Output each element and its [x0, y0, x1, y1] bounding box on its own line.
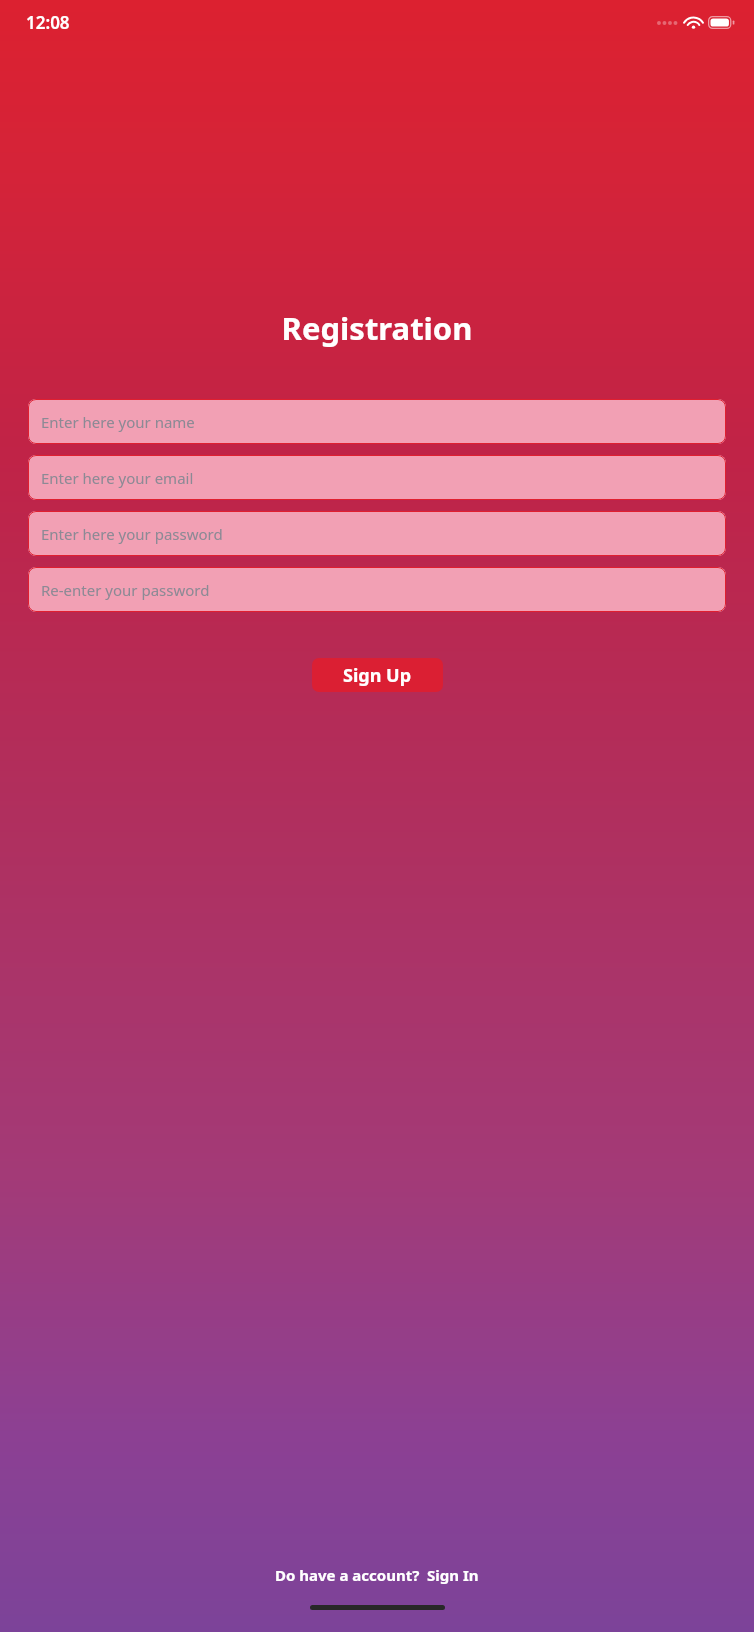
staticText: Re-enter your password: [41, 580, 210, 600]
staticText: Do have a account?: [275, 1565, 420, 1585]
button[interactable]: Re-enter your password: [28, 567, 726, 612]
staticText: Enter here your email: [41, 468, 194, 488]
button[interactable]: Sign In: [427, 1565, 479, 1585]
staticText: 12:08: [26, 11, 70, 34]
staticText: Sign Up: [343, 663, 412, 688]
staticText: Sign In: [427, 1565, 479, 1585]
button[interactable]: Enter here your password: [28, 511, 726, 556]
staticText: Registration: [0, 307, 754, 349]
button[interactable]: Sign Up: [312, 658, 443, 692]
button[interactable]: Enter here your email: [28, 455, 726, 500]
staticText: Enter here your password: [41, 524, 223, 544]
staticText: Enter here your name: [41, 412, 195, 432]
button[interactable]: Enter here your name: [28, 399, 726, 444]
